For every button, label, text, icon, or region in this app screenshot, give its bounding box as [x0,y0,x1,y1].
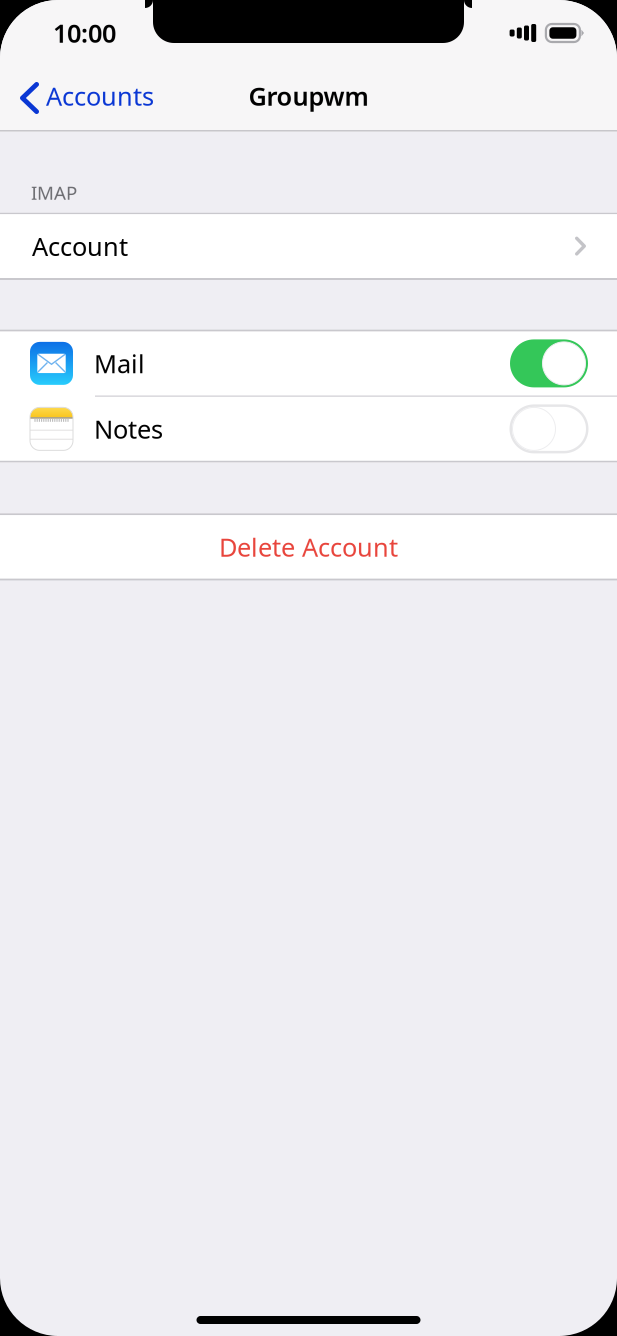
button[interactable]: Delete Account [0,515,617,579]
staticText: Groupwm [248,79,368,113]
staticText: Delete Account [219,530,398,564]
staticText: Accounts [46,79,154,113]
staticText: 10:00 [53,16,116,50]
staticText: Account [32,229,128,263]
staticText: Notes [94,412,163,446]
button[interactable]: Account [0,214,617,278]
button[interactable]: Accounts [0,63,168,129]
staticText: Mail [94,347,145,380]
staticText: IMAP [31,180,77,205]
